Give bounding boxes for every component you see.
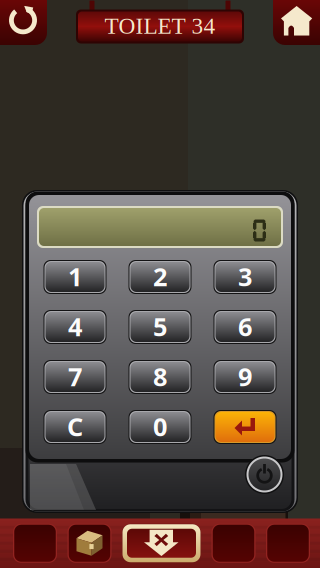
staticText: 0 bbox=[153, 410, 167, 443]
button[interactable]: Empty slot 5 bbox=[266, 524, 310, 563]
button[interactable]: 3 bbox=[213, 260, 276, 294]
staticText: 8 bbox=[153, 360, 167, 393]
staticText: 5 bbox=[153, 310, 167, 343]
button[interactable]: 7 bbox=[43, 360, 106, 394]
button[interactable]: Drop item bbox=[122, 524, 201, 563]
button[interactable]: 1 bbox=[43, 260, 106, 294]
button[interactable]: Restart level bbox=[0, 0, 47, 45]
button[interactable]: 8 bbox=[128, 360, 191, 394]
staticText: 9 bbox=[238, 360, 252, 393]
staticText: 1 bbox=[68, 260, 82, 293]
button[interactable]: 2 bbox=[128, 260, 191, 294]
staticText: 2 bbox=[153, 260, 167, 293]
button[interactable]: 4 bbox=[43, 310, 106, 344]
staticText: 4 bbox=[68, 310, 82, 343]
button[interactable]: 9 bbox=[213, 360, 276, 394]
button[interactable]: 5 bbox=[128, 310, 191, 344]
button[interactable]: Home bbox=[273, 0, 320, 45]
staticText: 7 bbox=[68, 360, 82, 393]
button[interactable]: Empty slot 4 bbox=[211, 524, 255, 563]
button[interactable]: 6 bbox=[213, 310, 276, 344]
staticText: 6 bbox=[238, 310, 252, 343]
staticText: TOILET 34 bbox=[104, 13, 215, 39]
button[interactable]: Enter bbox=[213, 410, 276, 444]
button[interactable]: 0 bbox=[128, 410, 191, 444]
staticText: 3 bbox=[238, 260, 252, 293]
staticText: C bbox=[67, 410, 83, 443]
button[interactable]: C bbox=[43, 410, 106, 444]
button[interactable]: Empty slot 1 bbox=[13, 524, 57, 563]
button[interactable]: Power bbox=[245, 455, 284, 494]
button[interactable]: Wooden chest bbox=[67, 524, 111, 563]
